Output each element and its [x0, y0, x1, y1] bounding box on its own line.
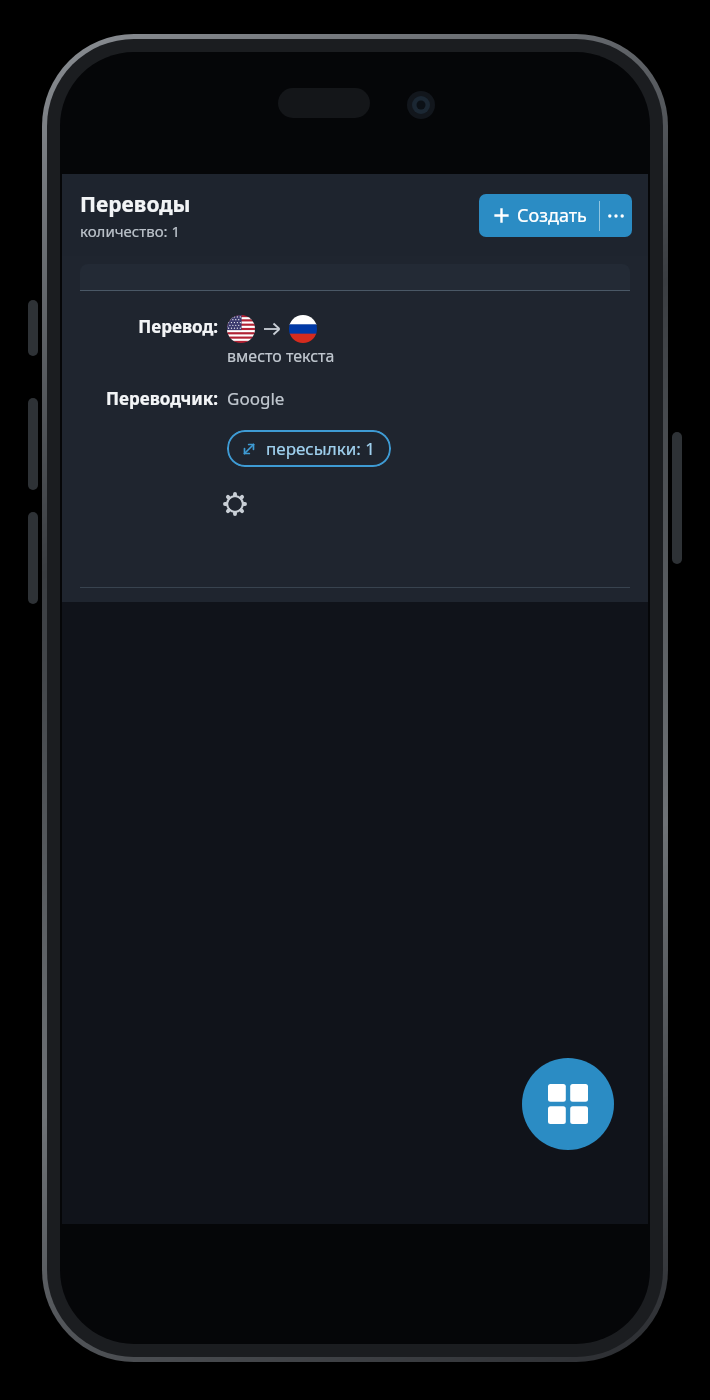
- button[interactable]: Приложения: [522, 1058, 614, 1150]
- button[interactable]: Настройки: [212, 481, 258, 527]
- button[interactable]: Дополнительно: [600, 195, 632, 237]
- button[interactable]: Переводчик:: [62, 387, 648, 410]
- staticText: Переводчик:: [106, 387, 218, 410]
- staticText: Google: [227, 387, 285, 410]
- button[interactable]: Создать: [479, 194, 599, 237]
- staticText: пересылки: 1: [266, 437, 375, 460]
- button[interactable]: Перевод:: [62, 315, 648, 367]
- staticText: Перевод:: [138, 315, 218, 338]
- button[interactable]: пересылки: 1: [227, 430, 391, 467]
- staticText: Переводы: [80, 190, 191, 219]
- staticText: Создать: [517, 203, 587, 228]
- staticText: количество: 1: [80, 221, 181, 241]
- staticText: вместо текста: [227, 345, 335, 367]
